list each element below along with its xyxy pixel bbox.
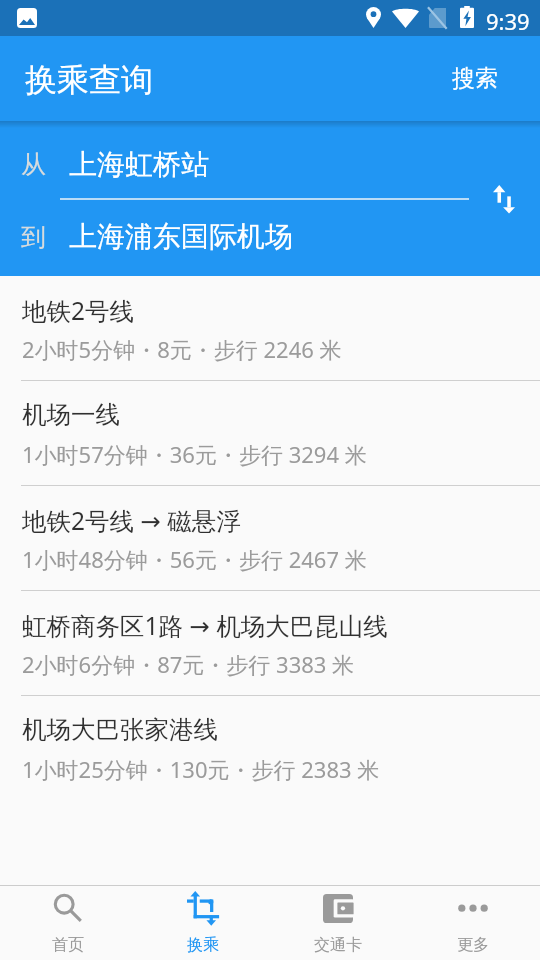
button[interactable]: 机场大巴张家港线 [0,696,540,801]
staticText: 搜索 [452,64,498,93]
staticText: 2小时6分钟・87元・步行 3383 米 [22,649,355,679]
staticText: 上海浦东国际机场 [69,219,293,254]
button[interactable]: 交通卡 [270,886,405,960]
staticText: 到 [21,222,46,253]
staticText: 机场一线 [22,399,120,430]
button[interactable]: 换乘 [135,886,270,960]
button[interactable]: 地铁2号线 [0,276,540,381]
staticText: 从 [21,149,46,180]
staticText: 地铁2号线 → 磁悬浮 [22,504,241,537]
button[interactable]: Swap origin and destination [480,175,528,223]
staticText: 更多 [457,935,489,955]
button[interactable]: 机场一线 [0,381,540,486]
staticText: 换乘查询 [25,60,153,100]
button[interactable]: 地铁2号线 → 磁悬浮 [0,486,540,591]
staticText: 首页 [52,935,84,955]
staticText: 地铁2号线 [22,294,135,327]
button[interactable]: 搜索 [430,48,540,109]
button[interactable]: 虹桥商务区1路 → 机场大巴昆山线 [0,591,540,696]
staticText: 2小时5分钟・8元・步行 2246 米 [22,334,342,364]
staticText: 换乘 [187,935,219,955]
staticText: 1小时48分钟・56元・步行 2467 米 [22,544,367,574]
staticText: 机场大巴张家港线 [22,714,218,745]
staticText: 虹桥商务区1路 → 机场大巴昆山线 [22,609,388,642]
staticText: 1小时57分钟・36元・步行 3294 米 [22,439,367,469]
staticText: 上海虹桥站 [69,147,209,182]
staticText: 9:39 [486,6,530,36]
button[interactable]: 到 [0,208,470,270]
staticText: 1小时25分钟・130元・步行 2383 米 [22,754,380,784]
staticText: 交通卡 [314,935,362,955]
button[interactable]: 更多 [405,886,540,960]
button[interactable]: 从 [0,135,470,197]
button[interactable]: 首页 [0,886,135,960]
